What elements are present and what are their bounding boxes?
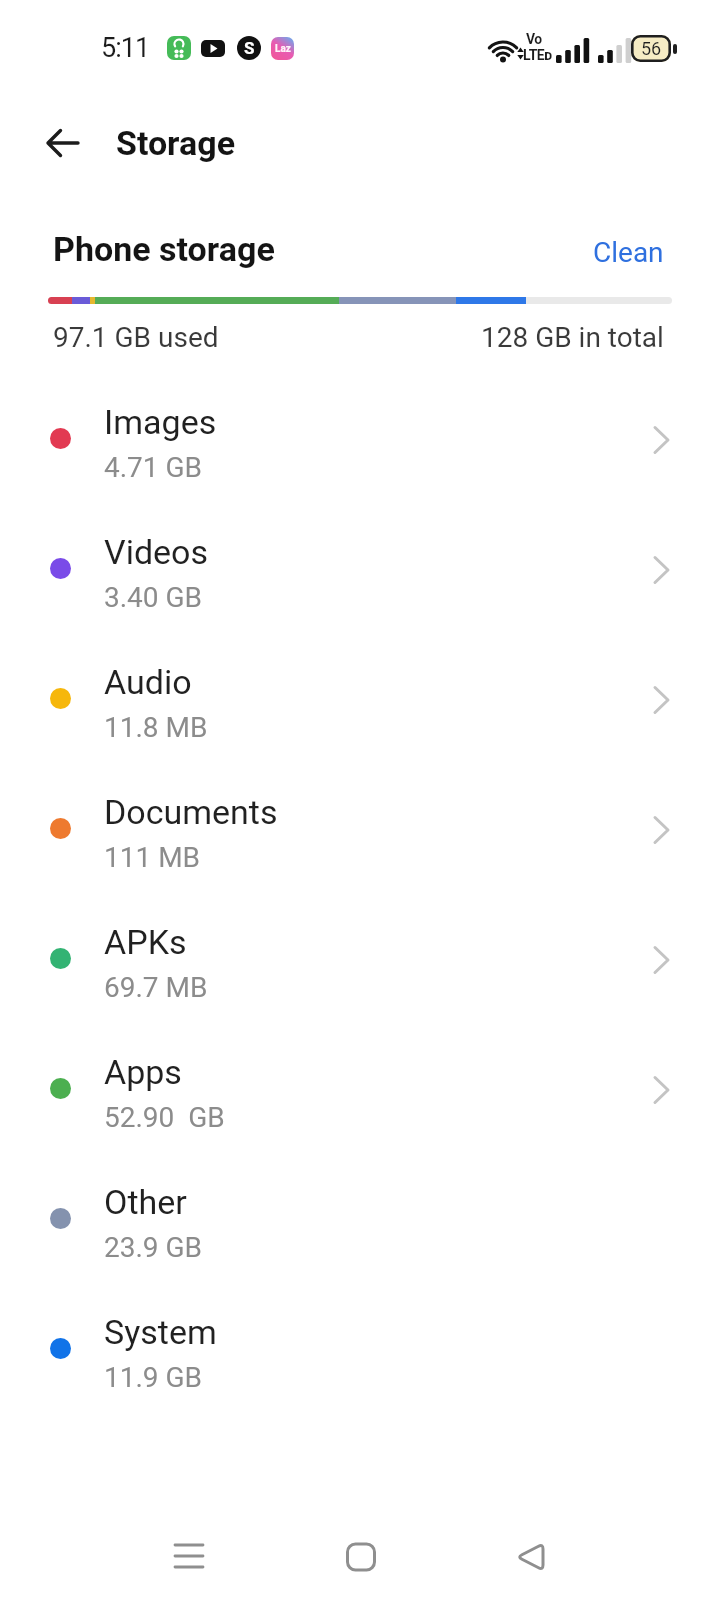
button[interactable]: Audio [0,634,720,764]
button[interactable]: Other [0,1154,720,1284]
staticText: 52.90 GB [104,1101,225,1134]
staticText: 11.8 MB [104,711,208,744]
button[interactable] [157,1524,221,1588]
staticText: Images [104,402,217,442]
button[interactable]: System [0,1284,720,1414]
staticText: Other [104,1182,187,1222]
staticText: LTEᴅ [523,47,552,63]
staticText: Videos [104,532,209,572]
staticText: APKs [104,922,187,962]
button[interactable]: Apps [0,1024,720,1154]
staticText: 4.71 GB [104,451,203,484]
staticText: Storage [116,123,236,163]
staticText: Phone storage [53,229,275,269]
staticText: System [104,1312,217,1352]
staticText: 128 GB in total [481,321,664,354]
staticText: Audio [104,662,192,702]
button[interactable]: Clean [593,236,664,269]
staticText: Documents [104,792,278,832]
staticText: Clean [593,236,664,269]
staticText: 5:11 [101,32,150,64]
staticText: 97.1 GB used [53,321,219,354]
button[interactable] [329,1525,393,1589]
button[interactable]: Videos [0,504,720,634]
staticText: 56 [641,38,662,59]
staticText: 3.40 GB [104,581,203,614]
staticText: S [244,38,255,58]
button[interactable] [35,115,91,171]
staticText: 111 MB [104,841,201,874]
button[interactable]: Images [0,374,720,504]
button[interactable] [499,1525,563,1589]
button[interactable]: Documents [0,764,720,894]
button[interactable]: APKs [0,894,720,1024]
staticText: 11.9 GB [104,1361,203,1394]
staticText: Laz [275,43,291,55]
staticText: Apps [104,1052,182,1092]
staticText: Vo [526,31,542,47]
staticText: 23.9 GB [104,1231,203,1264]
staticText: 69.7 MB [104,971,208,1004]
